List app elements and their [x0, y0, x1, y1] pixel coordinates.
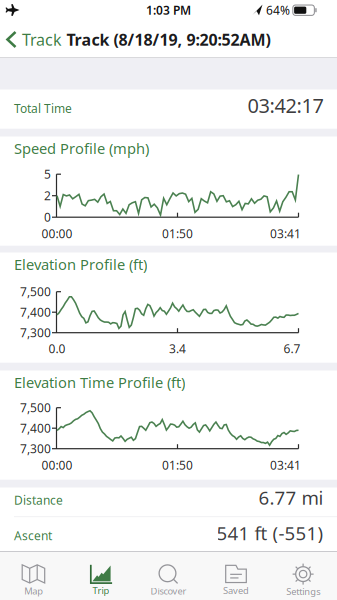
staticText: 7,300: [20, 441, 51, 457]
staticText: 541 ft (-551): [216, 520, 323, 545]
staticText: 6.7: [283, 341, 300, 357]
button[interactable]: Saved: [202, 552, 270, 600]
button[interactable]: Track: [6, 29, 62, 50]
button[interactable]: Settings: [270, 552, 337, 600]
staticText: 7,400: [20, 304, 51, 320]
staticText: Trip: [93, 584, 110, 597]
staticText: 0: [44, 209, 51, 225]
staticText: Settings: [286, 585, 320, 598]
staticText: Track (8/18/19, 9:20:52AM): [66, 29, 270, 50]
staticText: 1:03 PM: [146, 2, 191, 18]
staticText: 03:42:17: [247, 92, 323, 118]
staticText: 7,300: [20, 325, 51, 341]
staticText: 00:00: [41, 457, 72, 473]
staticText: 7,500: [20, 284, 51, 300]
staticText: Saved: [223, 584, 249, 597]
staticText: 5: [44, 166, 51, 182]
staticText: Map: [24, 585, 43, 597]
staticText: 7,400: [20, 420, 51, 436]
staticText: 2: [44, 188, 51, 204]
staticText: 7,500: [20, 400, 51, 416]
staticText: 01:50: [162, 457, 193, 473]
staticText: 01:50: [162, 226, 193, 242]
button[interactable]: Map: [0, 552, 67, 600]
staticText: 00:00: [41, 226, 72, 242]
staticText: Discover: [150, 585, 186, 597]
staticText: 03:41: [270, 457, 301, 473]
staticText: Speed Profile (mph): [14, 138, 149, 158]
staticText: Total Time: [14, 100, 72, 116]
staticText: 0.0: [48, 341, 65, 357]
staticText: 64%: [266, 2, 290, 18]
staticText: 6.77 mi: [258, 485, 323, 510]
staticText: 3.4: [169, 341, 186, 357]
button[interactable]: Discover: [135, 552, 202, 600]
staticText: Elevation Profile (ft): [14, 254, 147, 274]
staticText: 03:41: [270, 226, 301, 242]
staticText: Elevation Time Profile (ft): [14, 372, 185, 392]
staticText: Distance: [14, 492, 63, 508]
button[interactable]: Trip: [67, 552, 135, 600]
staticText: Track: [22, 29, 62, 50]
staticText: Ascent: [14, 527, 52, 543]
